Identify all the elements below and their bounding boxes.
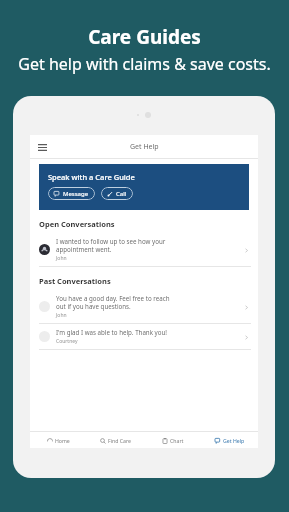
staticText: John	[56, 312, 67, 319]
staticText: Get Help	[130, 142, 159, 152]
staticText: Get Help	[223, 437, 245, 444]
other: Open	[241, 302, 251, 312]
staticText: I wanted to follow up to see how your	[56, 237, 166, 245]
button[interactable]: You have a good day. Feel free to reach	[30, 290, 258, 323]
other: Open	[241, 245, 251, 255]
button[interactable]: I'm glad I was able to help. Thank you!	[30, 324, 258, 349]
staticText: appointment went.	[56, 245, 112, 253]
button[interactable]: Chart	[144, 437, 201, 444]
button[interactable]: Call	[101, 187, 133, 200]
button[interactable]: Speak with a Care Guide	[39, 164, 249, 210]
button[interactable]: Message	[48, 187, 95, 200]
staticText: Home	[55, 437, 70, 444]
staticText: Care Guides	[88, 24, 201, 50]
button[interactable]: Find Care	[87, 437, 144, 444]
other: Open	[241, 332, 251, 342]
staticText: Call	[116, 190, 127, 198]
staticText: Chart	[170, 437, 184, 444]
staticText: Find Care	[108, 437, 131, 444]
staticText: Speak with a Care Guide	[48, 172, 135, 182]
staticText: Get help with claims & save costs.	[18, 53, 271, 75]
button[interactable]: Menu	[34, 139, 50, 155]
staticText: out if you have questions.	[56, 302, 131, 310]
staticText: You have a good day. Feel free to reach	[56, 294, 170, 302]
staticText: I'm glad I was able to help. Thank you!	[56, 328, 167, 336]
staticText: Open Conversations	[39, 219, 115, 229]
staticText: Past Conversations	[39, 276, 111, 286]
staticText: John	[56, 255, 67, 262]
staticText: Courtney	[56, 338, 78, 345]
button[interactable]: Home	[30, 437, 87, 444]
button[interactable]: Get Help	[201, 437, 258, 444]
staticText: Message	[63, 190, 89, 198]
button[interactable]: I wanted to follow up to see how your	[30, 233, 258, 266]
